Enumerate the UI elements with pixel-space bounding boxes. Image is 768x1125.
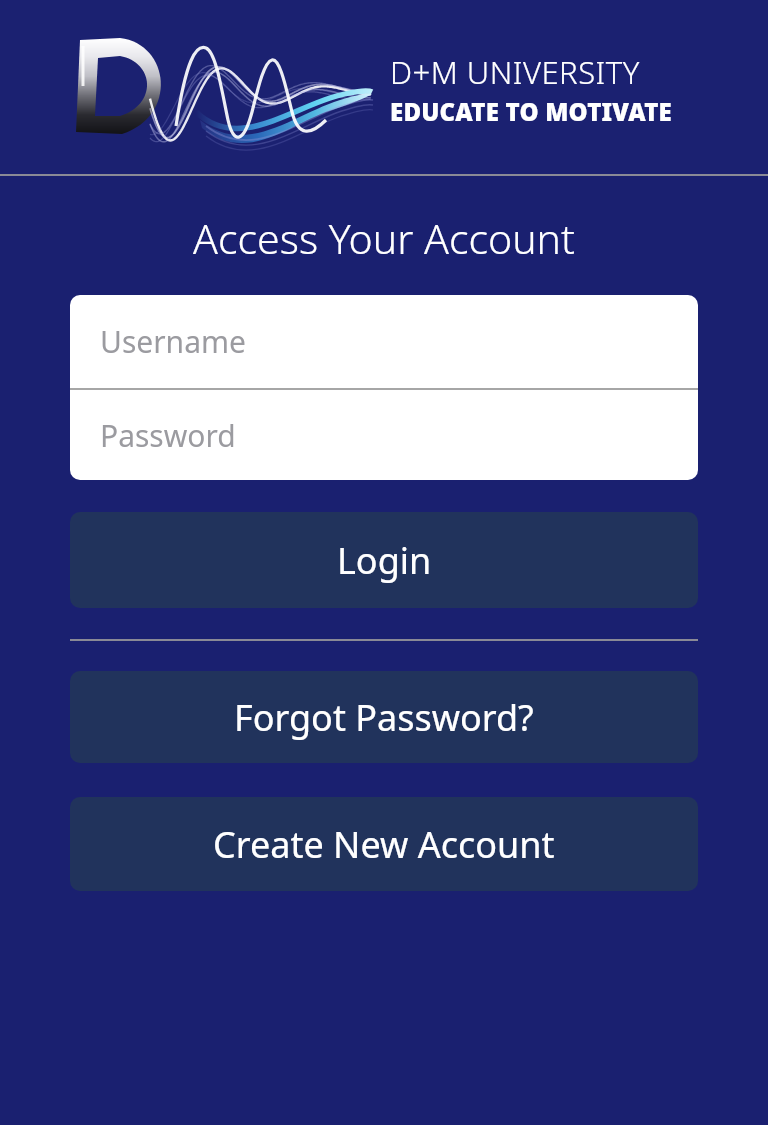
button[interactable]: Password: [70, 390, 698, 480]
staticText: Forgot Password?: [234, 693, 534, 742]
staticText: D+M UNIVERSITY: [390, 51, 640, 93]
staticText: Login: [337, 536, 432, 585]
staticText: Create New Account: [213, 820, 555, 869]
staticText: Access Your Account: [0, 210, 768, 266]
staticText: Password: [100, 415, 236, 456]
button[interactable]: Forgot Password?: [70, 671, 698, 763]
button[interactable]: Create New Account: [70, 797, 698, 891]
button[interactable]: Username: [70, 295, 698, 388]
staticText: EDUCATE TO MOTIVATE: [390, 95, 672, 128]
button[interactable]: Login: [70, 512, 698, 608]
staticText: Username: [100, 321, 246, 362]
